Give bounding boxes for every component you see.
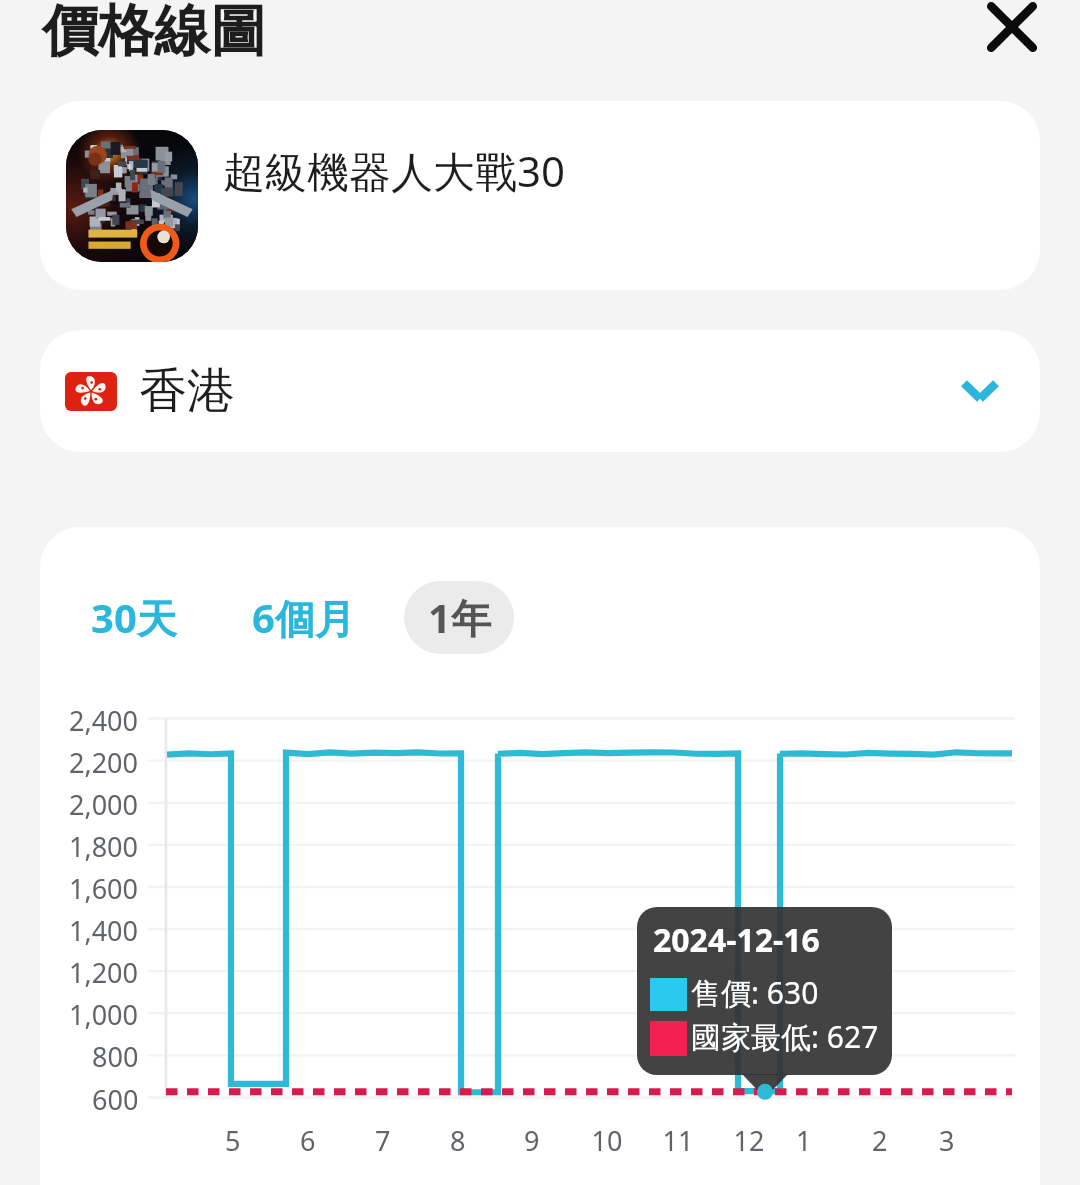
button[interactable]: 6個月: [250, 581, 356, 654]
button[interactable]: 超級機器人大戰30: [40, 101, 1040, 290]
button[interactable]: 香港: [40, 330, 1040, 452]
staticText: 30天: [91, 590, 177, 645]
staticText: 價格線圖: [42, 0, 266, 67]
button[interactable]: 1年: [404, 581, 514, 654]
staticText: 1年: [428, 590, 491, 645]
staticText: 香港: [139, 361, 235, 421]
button[interactable]: Close: [982, 0, 1042, 57]
button[interactable]: 30天: [86, 581, 182, 654]
staticText: 超級機器人大戰30: [223, 142, 566, 199]
staticText: 6個月: [252, 590, 355, 645]
